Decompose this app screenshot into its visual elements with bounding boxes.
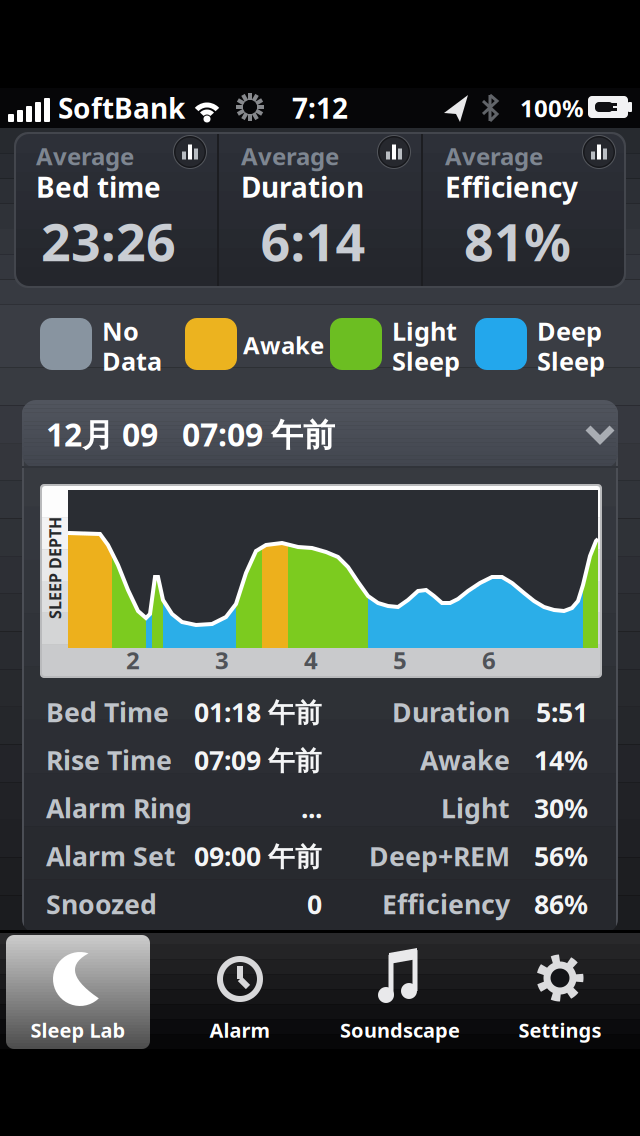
staticText: Awake [420,742,510,778]
staticText: 30% [534,790,588,826]
staticText: 23:26 [41,206,176,276]
staticText: Alarm [209,1017,270,1043]
staticText: Deep+REM [369,838,510,874]
staticText: 12月 09 07:09 午前 [46,413,335,455]
button[interactable]: Statistics [582,135,616,169]
button[interactable]: Sleep Lab [6,935,150,1049]
staticText: Settings [518,1017,601,1043]
staticText: Average [445,140,543,172]
staticText: 81% [464,206,571,276]
staticText: Light [392,314,457,348]
staticText: 4 [304,644,318,676]
staticText: 6:14 [260,206,365,276]
staticText: Alarm Set [46,838,176,874]
staticText: 0 [307,886,322,922]
staticText: 5 [393,644,407,676]
staticText: Duration [392,694,510,730]
staticText: Rise Time [46,742,172,778]
staticText: 56% [534,838,588,874]
staticText: 7:12 [292,89,348,127]
staticText: 09:00 午前 [194,838,322,874]
staticText: Snoozed [46,886,157,922]
button[interactable]: Soundscape [325,935,475,1049]
staticText: Bed Time [46,694,169,730]
staticText: Awake [243,329,324,361]
staticText: 6 [482,644,496,676]
staticText: 100% [520,92,584,124]
staticText: Light [441,790,510,826]
staticText: Alarm Ring [46,790,192,826]
staticText: 07:09 午前 [194,742,322,778]
staticText: Sleep Lab [30,1017,125,1043]
button[interactable]: Settings [485,935,635,1049]
staticText: Deep [537,314,602,348]
staticText: Average [241,140,339,172]
staticText: 86% [534,886,588,922]
staticText: 5:51 [536,694,588,730]
staticText: 14% [534,742,588,778]
staticText: Duration [241,168,364,206]
staticText: Sleep [392,344,460,378]
staticText: ... [301,790,322,826]
staticText: No [102,314,139,348]
staticText: Sleep [537,344,605,378]
button[interactable]: Statistics [173,135,207,169]
staticText: SoftBank [58,89,185,127]
button[interactable]: Alarm [165,935,315,1049]
button[interactable]: Statistics [377,135,411,169]
staticText: Data [102,344,162,378]
staticText: 2 [126,644,140,676]
staticText: 01:18 午前 [194,694,322,730]
staticText: Soundscape [340,1017,460,1043]
staticText: 3 [215,644,229,676]
staticText: Efficiency [382,886,510,922]
staticText: Efficiency [445,168,578,206]
button[interactable]: 12月 09 07:09 午前 [22,400,618,468]
staticText: Average [36,140,134,172]
staticText: Bed time [36,168,161,206]
staticText: SLEEP DEPTH [4,557,106,579]
